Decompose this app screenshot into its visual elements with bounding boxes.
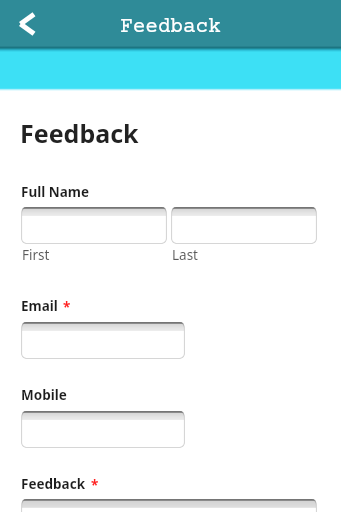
staticText: Email: [21, 297, 58, 315]
staticText: *: [91, 476, 99, 494]
staticText: Feedback: [120, 16, 221, 40]
button[interactable]: [21, 207, 167, 244]
staticText: Full Name: [21, 183, 90, 201]
button[interactable]: [21, 411, 185, 448]
staticText: Last: [172, 246, 198, 264]
staticText: *: [63, 298, 71, 316]
button[interactable]: Back: [8, 10, 36, 38]
staticText: Mobile: [21, 386, 67, 404]
staticText: Feedback: [21, 475, 86, 493]
staticText: First: [22, 246, 50, 264]
button[interactable]: [21, 499, 317, 512]
button[interactable]: [21, 322, 185, 359]
button[interactable]: [171, 207, 317, 244]
staticText: Feedback: [20, 116, 139, 150]
